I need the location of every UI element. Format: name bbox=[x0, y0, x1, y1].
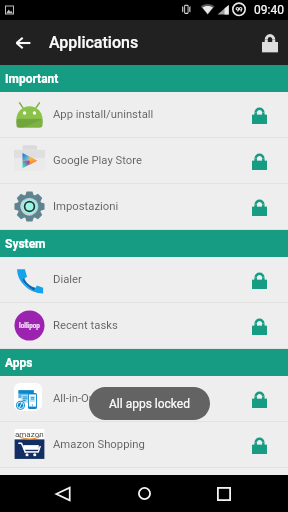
staticText: Apps bbox=[5, 356, 33, 370]
staticText: System bbox=[5, 237, 46, 251]
staticText: Applications bbox=[49, 33, 139, 52]
button[interactable]: amazon bbox=[0, 422, 288, 468]
button[interactable]: Back bbox=[7, 27, 39, 59]
staticText: Recent tasks bbox=[53, 319, 243, 332]
staticText: App install/uninstall bbox=[53, 108, 243, 121]
staticText: All apps locked bbox=[109, 397, 190, 411]
button[interactable]: Home bbox=[125, 475, 163, 512]
staticText: Google Play Store bbox=[53, 154, 243, 167]
staticText: lollipop bbox=[19, 322, 40, 329]
button[interactable]: Google Play Store bbox=[0, 138, 288, 184]
button[interactable]: Lock all apps bbox=[253, 23, 287, 63]
button[interactable]: Recents bbox=[205, 475, 243, 512]
button[interactable]: App install/uninstall bbox=[0, 92, 288, 138]
button[interactable]: Impostazioni bbox=[0, 184, 288, 230]
button[interactable]: Dialer bbox=[0, 257, 288, 303]
staticText: All-in-One Printer Remote bbox=[53, 392, 243, 405]
staticText: Important bbox=[5, 72, 59, 86]
staticText: amazon bbox=[15, 430, 44, 439]
staticText: Amazon Shopping bbox=[53, 438, 243, 451]
button[interactable]: All-in-One Printer Remote bbox=[0, 376, 288, 422]
staticText: Impostazioni bbox=[53, 200, 243, 213]
button[interactable]: lollipop bbox=[0, 303, 288, 349]
staticText: Dialer bbox=[53, 273, 243, 286]
staticText: 09:40 bbox=[254, 3, 284, 17]
button[interactable]: Back bbox=[44, 475, 82, 512]
